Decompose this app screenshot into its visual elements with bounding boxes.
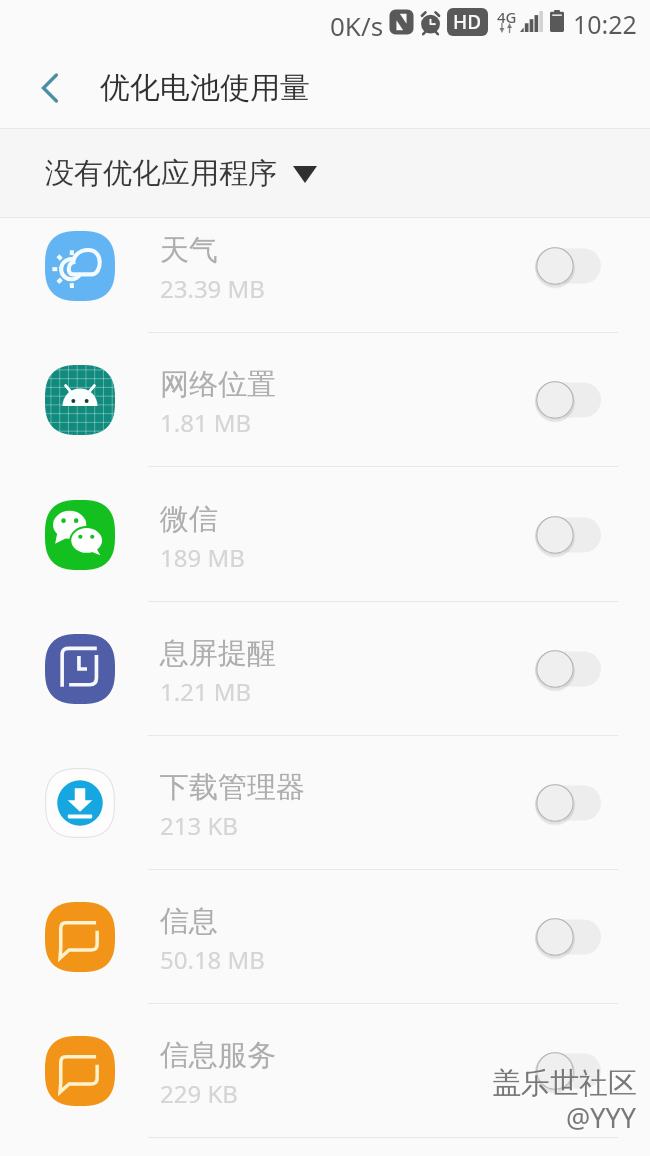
button[interactable]: 信息服务 bbox=[0, 1024, 650, 1118]
staticText: 下载管理器 bbox=[160, 769, 305, 806]
button[interactable]: Back bbox=[24, 61, 78, 115]
staticText: 信息 bbox=[160, 903, 218, 940]
staticText: HD bbox=[453, 9, 482, 35]
staticText: 0K/s bbox=[330, 8, 384, 43]
staticText: 信息服务 bbox=[160, 1037, 276, 1074]
button[interactable]: Toggle off bbox=[535, 917, 601, 957]
staticText: 229 KB bbox=[160, 1077, 238, 1110]
staticText: 微信 bbox=[160, 501, 218, 538]
staticText: @YYY bbox=[566, 1099, 637, 1136]
staticText: 1.21 MB bbox=[160, 675, 252, 708]
staticText: 23.39 MB bbox=[160, 272, 265, 305]
button[interactable]: 下载管理器 bbox=[0, 756, 650, 850]
staticText: 天气 bbox=[160, 232, 218, 269]
button[interactable]: 没有优化应用程序 bbox=[0, 129, 650, 217]
button[interactable]: 微信 bbox=[0, 488, 650, 582]
staticText: 50.18 MB bbox=[160, 943, 265, 976]
button[interactable]: Toggle off bbox=[535, 1051, 601, 1091]
staticText: 盖乐世社区 bbox=[492, 1065, 637, 1102]
staticText: @YYY bbox=[567, 1100, 638, 1137]
button[interactable]: 信息 bbox=[0, 890, 650, 984]
button[interactable]: Toggle off bbox=[535, 246, 601, 286]
staticText: 盖乐世社区 bbox=[493, 1066, 638, 1103]
button[interactable]: Toggle off bbox=[535, 515, 601, 555]
staticText: 4G bbox=[497, 7, 517, 27]
staticText: 10:22 bbox=[573, 7, 637, 41]
button[interactable]: 天气 bbox=[0, 219, 650, 313]
button[interactable]: 息屏提醒 bbox=[0, 622, 650, 716]
staticText: 1.81 MB bbox=[160, 406, 252, 439]
staticText: 优化电池使用量 bbox=[100, 69, 310, 107]
button[interactable]: Toggle off bbox=[535, 783, 601, 823]
button[interactable]: Toggle off bbox=[535, 380, 601, 420]
staticText: 213 KB bbox=[160, 809, 238, 842]
button[interactable]: Toggle off bbox=[535, 649, 601, 689]
staticText: 息屏提醒 bbox=[160, 635, 276, 672]
staticText: 网络位置 bbox=[160, 366, 276, 403]
staticText: 没有优化应用程序 bbox=[45, 155, 277, 192]
button[interactable]: 网络位置 bbox=[0, 353, 650, 447]
staticText: 189 MB bbox=[160, 541, 245, 574]
